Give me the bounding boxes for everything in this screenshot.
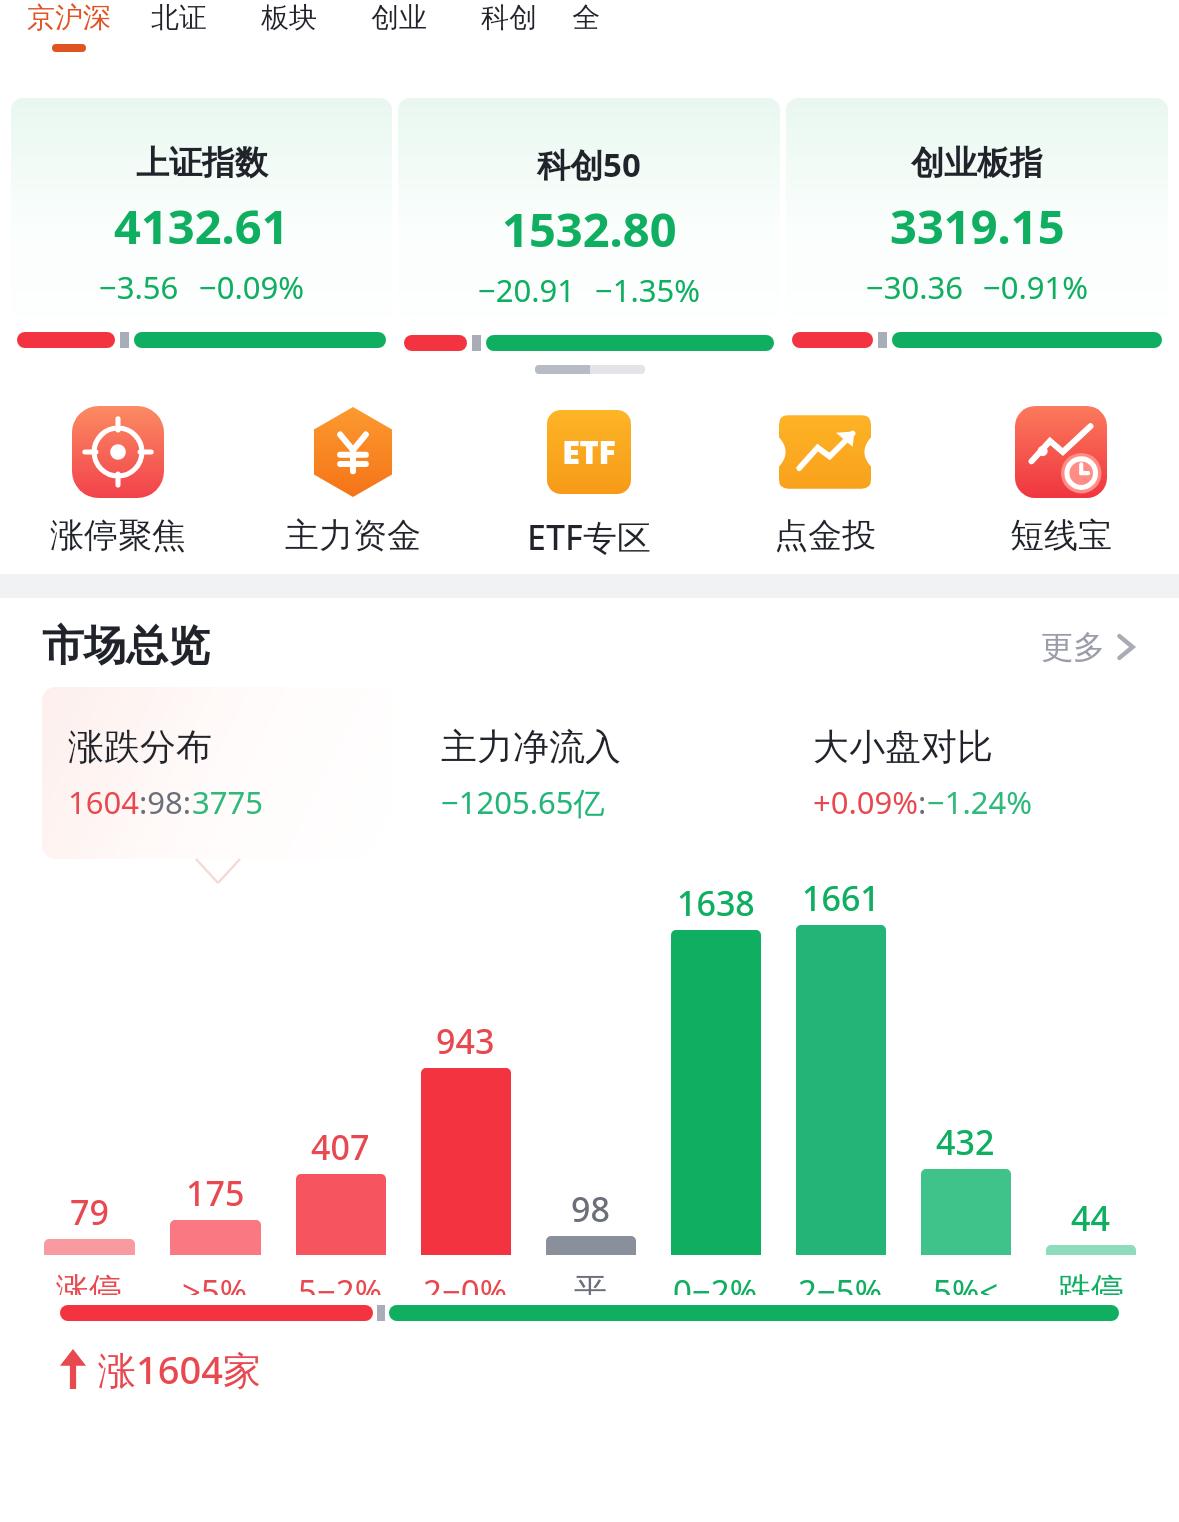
staticText: −30.36 (866, 266, 963, 308)
staticText: 3775 (192, 781, 263, 823)
staticText: 平 (574, 1269, 607, 1295)
button[interactable]: 主力净流入 (415, 687, 765, 859)
button[interactable]: 更多 (1041, 627, 1137, 667)
staticText: 1638 (677, 880, 755, 926)
staticText: 上证指数 (136, 142, 268, 184)
button[interactable]: 大小盘对比 (787, 687, 1137, 859)
staticText: +0.09% (813, 781, 918, 823)
staticText: 943 (436, 1018, 495, 1064)
staticText: −1.24% (927, 781, 1032, 823)
staticText: 0−2% (673, 1269, 758, 1295)
staticText: 407 (311, 1124, 370, 1170)
staticText: 涨1604家 (98, 1343, 261, 1395)
staticText: 涨停聚焦 (50, 514, 186, 557)
staticText: 京沪深 (27, 0, 111, 35)
staticText: 更多 (1041, 627, 1105, 667)
other: ETF专区 (547, 410, 631, 494)
staticText: −1205.65亿 (441, 781, 605, 823)
staticText: −20.91 (478, 269, 575, 311)
staticText: 创业板指 (911, 142, 1043, 184)
other: 点金投 (779, 406, 871, 498)
staticText: 涨跌分布 (68, 724, 212, 769)
staticText: 主力资金 (285, 514, 421, 557)
staticText: 1661 (802, 875, 880, 921)
staticText: 5%< (933, 1269, 999, 1295)
staticText: 98 (571, 1186, 610, 1232)
button[interactable]: 全 (564, 0, 608, 44)
staticText: :98: (139, 781, 192, 823)
staticText: 市场总览 (42, 620, 210, 673)
staticText: 主力净流入 (441, 724, 621, 769)
staticText: 2−5% (798, 1269, 883, 1295)
staticText: 科创50 (537, 142, 641, 187)
staticText: 3319.15 (890, 194, 1065, 258)
other: 主力资金 (307, 406, 399, 498)
staticText: 科创 (481, 0, 537, 35)
staticText: 大小盘对比 (813, 724, 993, 769)
button[interactable]: ETF专区 (471, 404, 707, 560)
staticText: >5% (182, 1269, 248, 1295)
staticText: 5−2% (298, 1269, 383, 1295)
staticText: 创业 (371, 0, 427, 35)
staticText: −3.56 (99, 266, 179, 308)
staticText: −0.91% (983, 266, 1088, 308)
staticText: 全 (572, 0, 600, 35)
button[interactable]: 点金投 (707, 404, 943, 557)
staticText: 175 (186, 1170, 245, 1216)
staticText: 44 (1071, 1195, 1110, 1241)
button[interactable]: 涨跌分布 (42, 687, 393, 859)
staticText: ETF专区 (527, 514, 651, 560)
other: 短线宝 (1015, 406, 1107, 498)
staticText: 短线宝 (1010, 514, 1112, 557)
button[interactable]: 京沪深 (14, 0, 124, 52)
staticText: 432 (936, 1119, 995, 1165)
staticText: ETF (562, 430, 616, 474)
staticText: 跌停 (1058, 1269, 1124, 1295)
button[interactable]: 上证指数 (11, 98, 392, 356)
button[interactable]: 板块 (234, 0, 344, 44)
button[interactable]: 短线宝 (943, 404, 1179, 557)
staticText: 1604 (68, 781, 139, 823)
button[interactable]: 创业 (344, 0, 454, 44)
staticText: −1.35% (595, 269, 700, 311)
button[interactable]: 科创50 (398, 98, 780, 356)
button[interactable]: 科创 (454, 0, 564, 44)
staticText: −0.09% (199, 266, 304, 308)
staticText: 涨停 (56, 1269, 122, 1295)
staticText: 4132.61 (114, 194, 289, 258)
button[interactable]: 创业板指 (786, 98, 1168, 356)
button[interactable]: 主力资金 (235, 404, 471, 557)
button[interactable]: 涨停聚焦 (0, 404, 235, 557)
staticText: 79 (70, 1189, 109, 1235)
other: 涨停聚焦 (72, 406, 164, 498)
staticText: 1532.80 (502, 197, 677, 261)
staticText: 板块 (261, 0, 317, 35)
staticText: 北证 (151, 0, 207, 35)
staticText: 点金投 (774, 514, 876, 557)
staticText: 2−0% (423, 1269, 508, 1295)
button[interactable]: 北证 (124, 0, 234, 44)
staticText: : (918, 781, 927, 823)
